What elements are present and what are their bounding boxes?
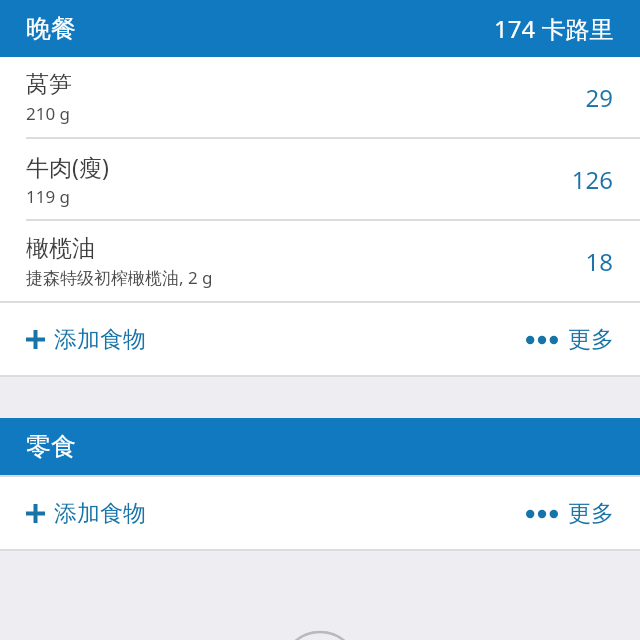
button[interactable]: 零食 [0,418,640,475]
staticText: 更多 [568,325,614,354]
button[interactable]: 莴笋 [0,57,640,137]
staticText: 29 [585,81,613,114]
staticText: 119 g [26,185,71,208]
button[interactable]: 牛肉(瘦) [0,139,640,219]
button[interactable]: 更多 [510,315,640,364]
staticText: 捷森特级初榨橄榄油, 2 g [26,266,213,289]
staticText: 添加食物 [54,499,146,528]
staticText: 牛肉(瘦) [26,151,109,182]
button[interactable]: 更多 [510,489,640,538]
staticText: 18 [585,245,613,278]
staticText: 126 [571,163,613,196]
staticText: 174 卡路里 [494,12,614,45]
button[interactable]: 添加食物 [0,315,162,364]
staticText: 更多 [568,499,614,528]
staticText: 零食 [26,431,76,462]
button[interactable]: 晚餐 [0,0,640,57]
staticText: 晚餐 [26,13,76,44]
staticText: 210 g [26,102,71,125]
button[interactable]: 添加食物 [0,489,162,538]
button[interactable]: 橄榄油 [0,221,640,301]
staticText: 添加食物 [54,325,146,354]
staticText: 莴笋 [26,70,72,99]
staticText: 橄榄油 [26,234,95,263]
